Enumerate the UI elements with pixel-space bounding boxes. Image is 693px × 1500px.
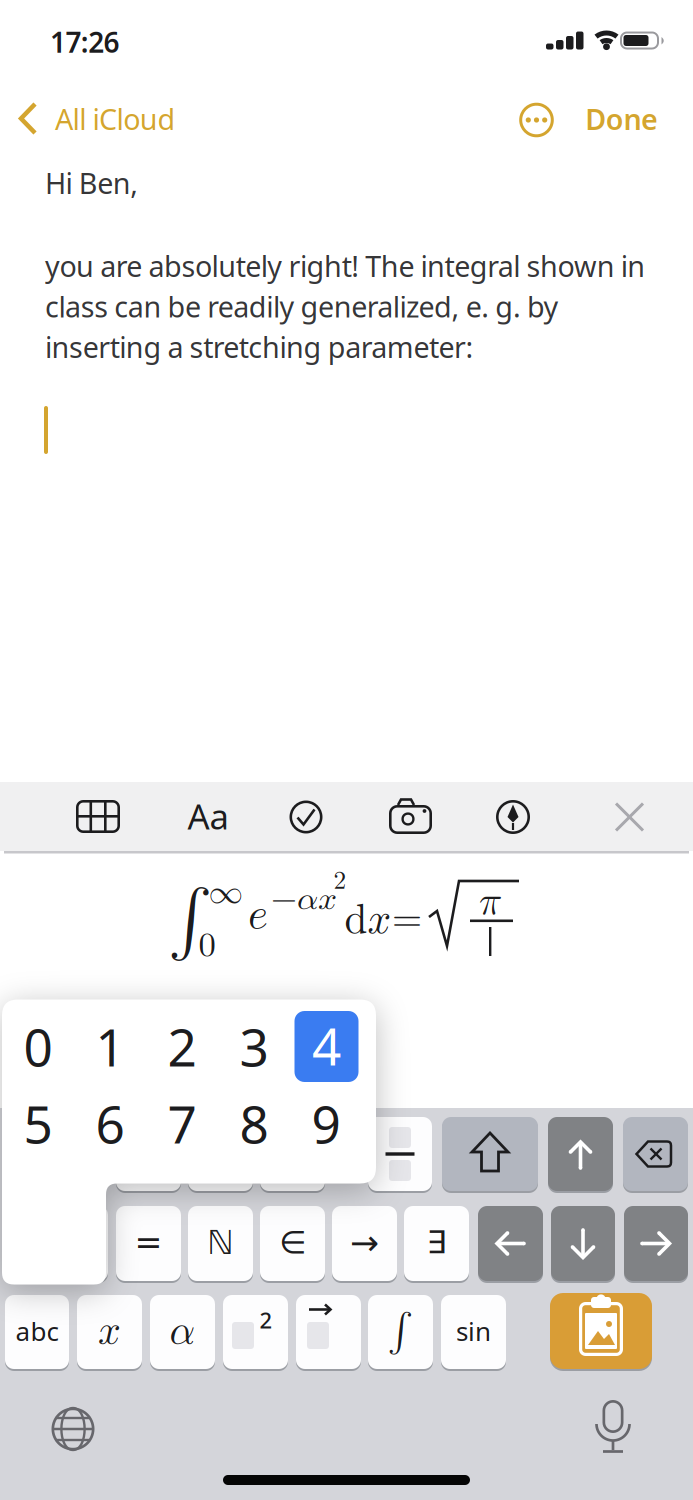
button[interactable]: = — [116, 1206, 181, 1281]
button[interactable]: 7 — [167, 1088, 196, 1158]
staticText: 2 — [167, 1011, 196, 1081]
button[interactable]: sin — [441, 1295, 506, 1369]
button[interactable] — [623, 1117, 688, 1191]
button[interactable]: 0 — [23, 1011, 52, 1081]
button[interactable] — [478, 1206, 543, 1281]
staticText: 6 — [95, 1088, 124, 1158]
staticText: 2 — [333, 868, 346, 894]
staticText: 8 — [239, 1088, 268, 1158]
staticText: inserting a stretching parameter: — [45, 327, 474, 366]
button[interactable] — [116, 1117, 181, 1191]
button[interactable] — [296, 1295, 361, 1369]
button[interactable] — [46, 1402, 100, 1456]
button[interactable]: 5 — [23, 1088, 52, 1158]
button[interactable] — [8, 1117, 108, 1191]
staticText: 7 — [167, 1088, 196, 1158]
button[interactable] — [624, 1206, 688, 1281]
staticText: 4 — [312, 1010, 341, 1080]
button[interactable] — [260, 1117, 325, 1191]
staticText: 𝛼 — [169, 1311, 195, 1351]
button[interactable]: Done — [585, 99, 658, 138]
staticText: abc — [15, 1313, 58, 1349]
staticText: Hi Ben, — [45, 163, 138, 202]
staticText: 0 — [198, 929, 215, 963]
staticText: = — [134, 1223, 162, 1262]
staticText: Done — [585, 99, 658, 138]
button[interactable]: 2 — [167, 1011, 196, 1081]
staticText: All iCloud — [55, 99, 175, 138]
staticText: ∃ — [426, 1224, 446, 1261]
button[interactable] — [8, 1206, 108, 1281]
staticText: 𝑥 — [98, 1311, 121, 1351]
staticText: 5 — [23, 1088, 52, 1158]
button[interactable]: Aa — [187, 792, 228, 840]
staticText: 3 — [239, 1011, 268, 1081]
button[interactable]: → — [332, 1206, 397, 1281]
staticText: 𝑒 — [248, 894, 268, 936]
button[interactable]: 3 — [239, 1011, 268, 1081]
staticText: class can be readily generalized, e. g. … — [45, 287, 558, 326]
staticText: 2 — [259, 1305, 272, 1335]
button[interactable]: 8 — [239, 1088, 268, 1158]
button[interactable] — [188, 1117, 253, 1191]
button[interactable] — [382, 792, 438, 840]
button[interactable]: 9 — [311, 1088, 340, 1158]
staticText: ℕ — [207, 1223, 234, 1262]
button[interactable]: ℕ — [188, 1206, 253, 1281]
button[interactable] — [442, 1117, 538, 1191]
staticText: 17:26 — [50, 23, 120, 61]
button[interactable] — [550, 1293, 652, 1369]
button[interactable]: 1 — [95, 1011, 124, 1081]
button[interactable]: abc — [5, 1295, 69, 1369]
staticText: you are absolutely right! The integral s… — [45, 246, 645, 285]
staticText: ∈ — [279, 1224, 306, 1261]
button[interactable] — [551, 1206, 615, 1281]
staticText: 1 — [95, 1011, 124, 1081]
staticText: 9 — [311, 1088, 340, 1158]
staticText: d𝑥 — [344, 899, 391, 941]
button[interactable]: 𝛼 — [150, 1295, 215, 1369]
button[interactable] — [607, 792, 655, 840]
button[interactable] — [517, 100, 557, 140]
button[interactable] — [548, 1117, 613, 1191]
staticText: Aa — [187, 792, 228, 840]
button[interactable] — [368, 1117, 432, 1191]
staticText: ∫ — [168, 887, 212, 953]
button[interactable]: ∃ — [404, 1206, 469, 1281]
button[interactable]: 𝑥 — [77, 1295, 142, 1369]
staticText: ∞ — [208, 876, 243, 910]
staticText: = — [392, 900, 422, 938]
button[interactable] — [68, 792, 126, 840]
button[interactable] — [586, 1396, 640, 1460]
staticText: sin — [456, 1313, 491, 1349]
button[interactable]: ∈ — [260, 1206, 325, 1281]
button[interactable] — [223, 1295, 288, 1369]
staticText: 𝜋 — [479, 883, 501, 921]
staticText: 0 — [23, 1011, 52, 1081]
button[interactable]: 6 — [95, 1088, 124, 1158]
button[interactable] — [282, 792, 330, 840]
staticText: −𝛼𝑥 — [271, 882, 337, 916]
button[interactable] — [489, 792, 537, 840]
staticText: ∫ — [387, 1312, 413, 1350]
staticText: → — [350, 1222, 379, 1263]
button[interactable]: ∫ — [368, 1295, 433, 1369]
button[interactable]: All iCloud — [55, 99, 175, 138]
button[interactable]: 4 — [294, 1011, 358, 1082]
